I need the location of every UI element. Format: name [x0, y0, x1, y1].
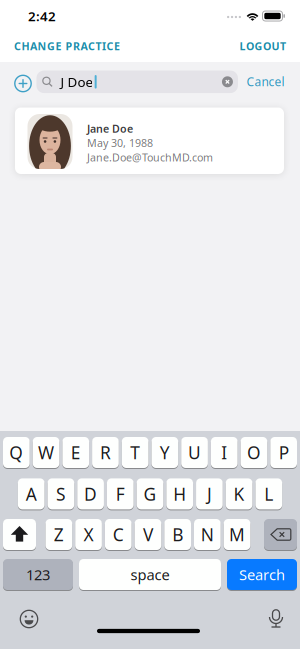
- button[interactable]: Add patient: [13, 73, 33, 93]
- button[interactable]: CHANGE PRACTICE: [14, 39, 120, 53]
- button[interactable]: Clear text: [222, 76, 233, 87]
- staticText: F: [116, 482, 125, 505]
- button[interactable]: Cancel: [247, 73, 285, 89]
- staticText: A: [26, 482, 37, 505]
- staticText: N: [201, 523, 214, 546]
- button[interactable]: G: [137, 478, 163, 509]
- staticText: S: [56, 482, 66, 505]
- button[interactable]: T: [122, 437, 148, 468]
- button[interactable]: L: [255, 478, 282, 509]
- button[interactable]: 123: [3, 559, 73, 590]
- staticText: J Doe: [60, 73, 93, 91]
- button[interactable]: U: [181, 437, 208, 468]
- button[interactable]: Emoji: [19, 609, 39, 629]
- staticText: P: [279, 441, 289, 464]
- button[interactable]: I: [211, 437, 238, 468]
- button[interactable]: H: [166, 478, 193, 509]
- button[interactable]: Search: [227, 559, 297, 590]
- button[interactable]: P: [270, 437, 297, 468]
- button[interactable]: V: [135, 519, 161, 550]
- staticText: Cancel: [247, 73, 285, 89]
- staticText: V: [143, 523, 153, 546]
- staticText: Y: [160, 441, 170, 464]
- staticText: X: [84, 523, 94, 546]
- button[interactable]: Shift: [3, 519, 36, 550]
- staticText: Jane Doe: [87, 121, 133, 136]
- button[interactable]: X: [75, 519, 102, 550]
- staticText: J: [207, 482, 212, 505]
- button[interactable]: J: [196, 478, 223, 509]
- button[interactable]: O: [241, 437, 267, 468]
- button[interactable]: space: [79, 559, 221, 590]
- button[interactable]: Q: [3, 437, 30, 468]
- button[interactable]: M: [224, 519, 250, 550]
- staticText: M: [229, 523, 245, 546]
- button[interactable]: D: [77, 478, 104, 509]
- staticText: W: [38, 441, 54, 464]
- staticText: R: [100, 441, 111, 464]
- staticText: C: [113, 523, 124, 546]
- staticText: 123: [26, 565, 50, 584]
- staticText: O: [247, 441, 261, 464]
- button[interactable]: Delete: [264, 519, 297, 550]
- staticText: 2:42: [28, 7, 56, 25]
- button[interactable]: K: [226, 478, 252, 509]
- staticText: Q: [9, 441, 23, 464]
- button[interactable]: W: [33, 437, 59, 468]
- staticText: Search: [239, 565, 285, 584]
- button[interactable]: S: [47, 478, 74, 509]
- staticText: CHANGE PRACTICE: [14, 39, 120, 53]
- staticText: L: [264, 482, 273, 505]
- staticText: Z: [54, 523, 64, 546]
- staticText: G: [143, 482, 156, 505]
- button[interactable]: N: [194, 519, 221, 550]
- button[interactable]: R: [92, 437, 119, 468]
- button[interactable]: C: [105, 519, 132, 550]
- staticText: May 30, 1988: [87, 136, 153, 150]
- button[interactable]: F: [107, 478, 134, 509]
- staticText: LOGOUT: [239, 39, 286, 53]
- staticText: D: [84, 482, 97, 505]
- staticText: space: [130, 565, 169, 584]
- staticText: B: [172, 523, 183, 546]
- staticText: E: [71, 441, 81, 464]
- staticText: Jane.Doe@TouchMD.com: [87, 150, 213, 164]
- button[interactable]: Jane Doe: [15, 107, 284, 174]
- button[interactable]: B: [164, 519, 191, 550]
- button[interactable]: A: [18, 478, 44, 509]
- button[interactable]: Z: [45, 519, 72, 550]
- staticText: K: [234, 482, 245, 505]
- button[interactable]: Dictation: [268, 609, 284, 629]
- button[interactable]: E: [62, 437, 89, 468]
- staticText: T: [130, 441, 140, 464]
- staticText: H: [173, 482, 186, 505]
- staticText: I: [221, 441, 227, 464]
- button[interactable]: Y: [151, 437, 178, 468]
- button[interactable]: LOGOUT: [239, 39, 286, 53]
- staticText: U: [188, 441, 201, 464]
